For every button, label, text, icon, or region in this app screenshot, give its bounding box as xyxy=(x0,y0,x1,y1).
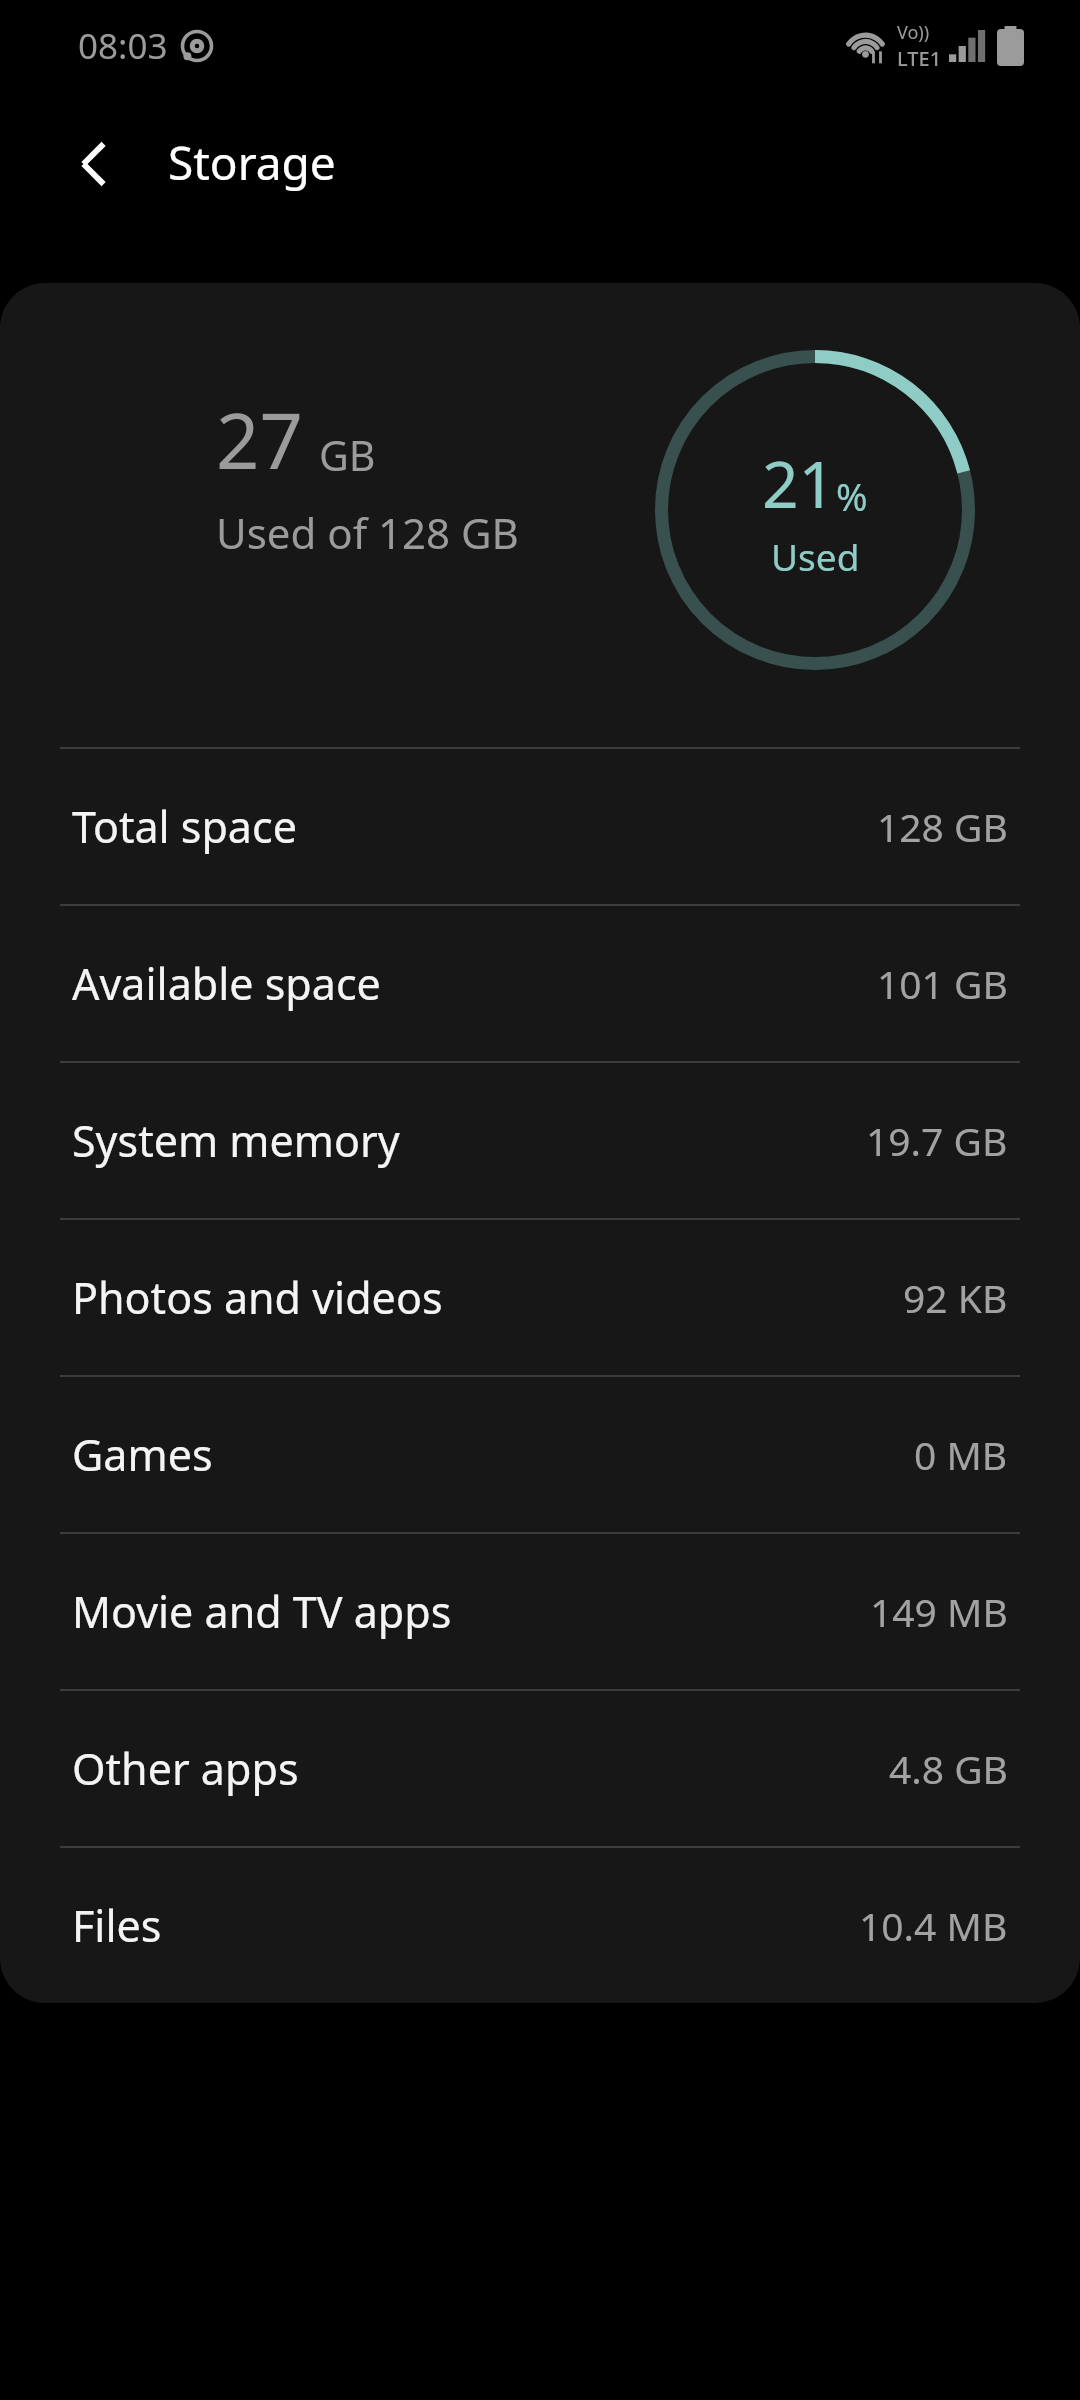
button[interactable]: Available space xyxy=(0,906,1080,1061)
button[interactable]: System memory xyxy=(0,1063,1080,1218)
staticText: Used xyxy=(771,531,860,581)
staticText: 92 KB xyxy=(903,1271,1008,1324)
button[interactable]: Movie and TV apps xyxy=(0,1534,1080,1689)
staticText: 0 MB xyxy=(914,1428,1008,1481)
staticText: % xyxy=(836,470,868,522)
staticText: 101 GB xyxy=(877,957,1008,1010)
staticText: 149 MB xyxy=(870,1585,1008,1638)
staticText: LTE1 xyxy=(897,45,942,72)
staticText: Total space xyxy=(72,797,297,856)
staticText: 128 GB xyxy=(877,800,1008,853)
staticText: 21 xyxy=(762,440,836,527)
staticText: GB xyxy=(319,427,376,483)
button[interactable]: Files xyxy=(0,1848,1080,2003)
button[interactable]: Total space xyxy=(0,749,1080,904)
staticText: Movie and TV apps xyxy=(72,1582,452,1641)
staticText: 10.4 MB xyxy=(859,1899,1008,1952)
staticText: Files xyxy=(72,1896,162,1955)
staticText: Storage xyxy=(168,131,336,194)
staticText: 08:03 xyxy=(78,22,168,70)
button[interactable]: Back xyxy=(46,116,142,212)
staticText: 4.8 GB xyxy=(889,1742,1008,1795)
button[interactable]: Games xyxy=(0,1377,1080,1532)
button[interactable]: Photos and videos xyxy=(0,1220,1080,1375)
staticText: Available space xyxy=(72,954,381,1013)
staticText: Vo)) xyxy=(897,20,930,45)
staticText: 19.7 GB xyxy=(866,1114,1008,1167)
button[interactable]: Other apps xyxy=(0,1691,1080,1846)
staticText: System memory xyxy=(72,1111,400,1170)
staticText: Photos and videos xyxy=(72,1268,443,1327)
staticText: Used of 128 GB xyxy=(216,504,519,561)
staticText: Other apps xyxy=(72,1739,299,1798)
staticText: Games xyxy=(72,1425,213,1484)
staticText: 27 xyxy=(216,388,303,492)
